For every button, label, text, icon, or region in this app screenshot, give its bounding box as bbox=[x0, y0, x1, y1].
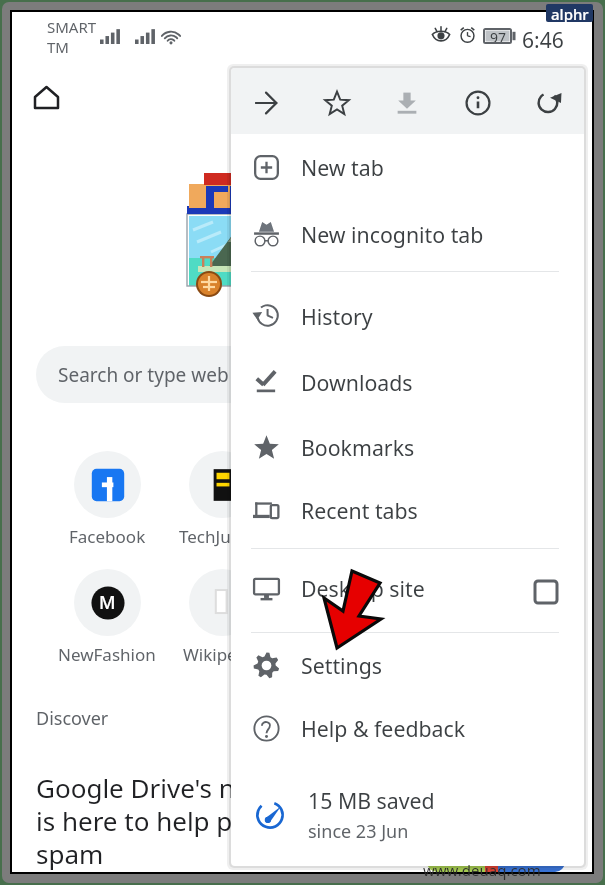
button[interactable]: History bbox=[231, 286, 584, 346]
button[interactable]: Help & feedback bbox=[231, 698, 584, 758]
button[interactable]: Settings bbox=[231, 635, 584, 695]
staticText: 97 bbox=[490, 28, 507, 42]
staticText: Wikipedia bbox=[183, 643, 262, 666]
button[interactable]: New incognito tab bbox=[231, 204, 584, 264]
button[interactable]: Wikipedia bbox=[162, 569, 282, 666]
staticText: since 23 Jun bbox=[308, 819, 409, 844]
staticText: 15 MB saved bbox=[308, 786, 435, 815]
staticText: Bookmarks bbox=[301, 433, 415, 462]
button[interactable]: Facebook bbox=[47, 451, 167, 548]
button[interactable]: Download bbox=[381, 77, 433, 129]
staticText: TechJunkie bbox=[179, 525, 265, 548]
staticText: Discover bbox=[36, 706, 109, 731]
button[interactable]: Bookmark bbox=[311, 77, 363, 129]
button[interactable]: M bbox=[47, 569, 167, 666]
staticText: TM bbox=[47, 37, 69, 57]
button[interactable]: Reload bbox=[523, 77, 575, 129]
button[interactable]: Forward bbox=[240, 77, 292, 129]
button[interactable]: Search or type web address bbox=[36, 346, 456, 403]
button[interactable]: Home bbox=[26, 77, 66, 117]
button[interactable]: Downloads bbox=[231, 352, 584, 412]
button[interactable]: Page info bbox=[452, 77, 504, 129]
staticText: www.deuaq.com bbox=[423, 860, 541, 880]
staticText: New tab bbox=[301, 153, 384, 182]
staticText: Desktop site bbox=[301, 574, 425, 603]
button[interactable]: Recent tabs bbox=[231, 480, 584, 540]
button[interactable]: 15 MB saved bbox=[231, 782, 584, 848]
staticText: Help & feedback bbox=[301, 714, 466, 743]
staticText: Recent tabs bbox=[301, 496, 418, 525]
button[interactable]: Desktop site bbox=[231, 558, 584, 618]
staticText: Settings bbox=[301, 651, 383, 680]
staticText: Search or type web address bbox=[58, 362, 304, 388]
button[interactable]: Bookmarks bbox=[231, 417, 584, 477]
staticText: SMART bbox=[47, 17, 97, 37]
staticText: Facebook bbox=[69, 525, 146, 548]
staticText: alphr bbox=[551, 4, 589, 22]
staticText: History bbox=[301, 302, 373, 331]
button[interactable]: New tab bbox=[231, 137, 584, 197]
staticText: New incognito tab bbox=[301, 220, 484, 249]
staticText: Google Drive's new security feature is h… bbox=[36, 770, 376, 872]
staticText: M bbox=[99, 590, 116, 615]
staticText: NewFashion bbox=[58, 643, 156, 666]
button[interactable]: TechJunkie bbox=[162, 451, 282, 548]
staticText: Downloads bbox=[301, 368, 413, 397]
staticText: 6:46 bbox=[522, 26, 564, 55]
